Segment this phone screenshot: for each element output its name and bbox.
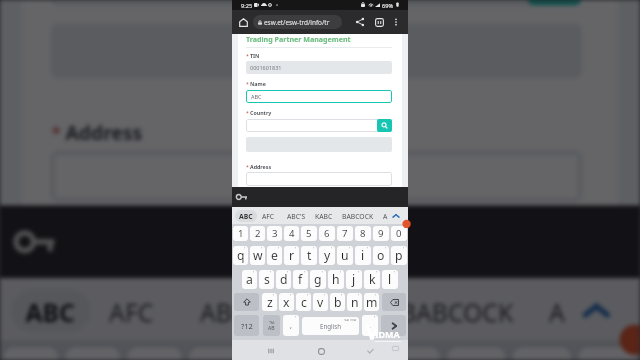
button[interactable]: English [302, 317, 359, 335]
button[interactable]: ' [242, 270, 257, 289]
button[interactable]: esw.et/esw-trd/info/tr [253, 15, 342, 29]
button[interactable]: ' [364, 270, 380, 289]
button[interactable] [51, 0, 582, 5]
button[interactable]: A [549, 289, 567, 333]
button[interactable]: ' [347, 293, 362, 311]
button[interactable]: ' [382, 270, 398, 289]
button[interactable]: ' [250, 246, 265, 265]
button[interactable]: 0 [391, 226, 407, 241]
button[interactable]: 2 [65, 347, 120, 360]
button[interactable]: ' [313, 293, 328, 311]
button[interactable]: 1 [4, 347, 58, 360]
button[interactable]: 0 [578, 347, 636, 360]
staticText: w [253, 247, 263, 264]
button[interactable]: ' [328, 270, 344, 289]
button[interactable]: 4 [284, 226, 299, 241]
button[interactable]: ABC [246, 90, 392, 103]
button[interactable]: ' [301, 246, 317, 265]
button[interactable]: Home [311, 341, 331, 360]
button[interactable]: BABCOCK [400, 289, 516, 333]
button[interactable]: ' [279, 293, 294, 311]
button[interactable]: AFC [109, 289, 156, 333]
button[interactable]: ' [267, 246, 282, 265]
button[interactable]: BABCOCK [342, 210, 374, 222]
button[interactable]: Switch keyboard [389, 344, 401, 352]
button[interactable]: ' [337, 246, 353, 265]
staticText: ' [349, 246, 351, 252]
button[interactable]: Search [527, 0, 582, 5]
staticText: 9 [378, 227, 384, 240]
button[interactable]: ' [346, 270, 362, 289]
button[interactable]: Expand suggestions [571, 285, 622, 333]
button[interactable]: ' [355, 246, 371, 265]
button[interactable]: ' [391, 246, 407, 265]
button[interactable]: Share [353, 15, 367, 29]
button[interactable]: Recents [261, 341, 281, 360]
staticText: ' [290, 293, 292, 299]
button[interactable]: AFC [262, 210, 275, 222]
button[interactable]: 5 [301, 226, 317, 241]
button[interactable]: 9 [513, 347, 571, 360]
staticText: j [352, 271, 356, 288]
button[interactable]: Expand suggestions [389, 209, 403, 222]
button[interactable]: ' [373, 246, 389, 265]
button[interactable]: 9 [373, 226, 389, 241]
button[interactable]: Backspace [382, 293, 406, 311]
button[interactable]: KABC [315, 210, 333, 222]
button[interactable]: ABC'S [200, 289, 269, 333]
button[interactable]: 3 [267, 226, 282, 241]
button[interactable]: Home [236, 15, 250, 29]
button[interactable]: Shift [234, 293, 259, 311]
button[interactable]: ' [284, 246, 299, 265]
button[interactable]: Hide keyboard [360, 341, 380, 360]
staticText: 69% [382, 2, 394, 10]
button[interactable]: ' [276, 270, 291, 289]
button[interactable]: 7 [337, 226, 353, 241]
button[interactable]: ' [262, 293, 277, 311]
staticText: AB [268, 325, 275, 332]
button[interactable]: ' [319, 246, 335, 265]
staticText: p [395, 247, 403, 264]
button[interactable]: 1 [233, 226, 248, 241]
button[interactable]: ' [330, 293, 345, 311]
staticText: ' [261, 246, 263, 252]
button[interactable] [246, 172, 392, 186]
button[interactable]: ' [283, 315, 299, 336]
button[interactable]: ' [259, 270, 274, 289]
button[interactable]: ABC'S [287, 210, 306, 222]
button[interactable]: A [383, 210, 388, 222]
button[interactable]: ' [293, 270, 308, 289]
button[interactable]: 8 [447, 347, 505, 360]
button[interactable]: 2 [250, 226, 265, 241]
staticText: n [351, 294, 359, 311]
staticText: m [366, 294, 378, 311]
button[interactable]: ' [310, 270, 326, 289]
button[interactable]: 3 [127, 347, 182, 360]
button[interactable]: ' [233, 246, 248, 265]
staticText: 4 [207, 351, 229, 360]
staticText: b [334, 294, 342, 311]
button[interactable]: Search [377, 119, 392, 132]
staticText: A [549, 296, 567, 329]
button[interactable]: More options [390, 16, 402, 28]
button[interactable]: 6 [316, 347, 375, 360]
button[interactable]: 5 [251, 347, 309, 360]
button[interactable] [51, 151, 582, 202]
button[interactable]: ' [296, 293, 311, 311]
button[interactable]: ' [362, 315, 378, 336]
button[interactable]: 4 [189, 347, 244, 360]
button[interactable]: Tabs [372, 15, 386, 29]
button[interactable]: 7 [382, 347, 440, 360]
button[interactable]: 8 [355, 226, 371, 241]
button[interactable]: ?12 [234, 315, 259, 336]
button[interactable]: KABC [302, 289, 367, 333]
button[interactable]: ABC [11, 289, 91, 333]
button[interactable]: ABC [235, 210, 257, 222]
button[interactable]: 6 [319, 226, 335, 241]
button[interactable]: 0001601831 [246, 61, 392, 74]
button[interactable] [246, 119, 392, 132]
staticText: ' [253, 270, 255, 276]
button[interactable]: ' [364, 293, 379, 311]
button[interactable]: Language [263, 315, 280, 336]
button[interactable]: Enter [381, 315, 406, 336]
